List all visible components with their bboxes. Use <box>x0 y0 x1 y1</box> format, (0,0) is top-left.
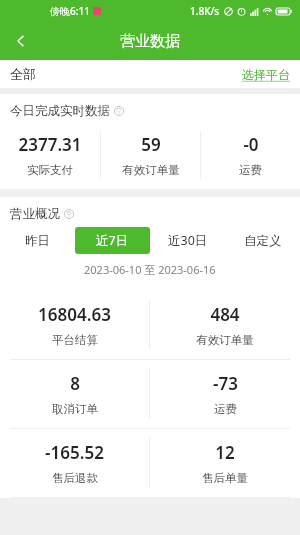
staticText: 484 <box>210 303 240 326</box>
staticText: 运费 <box>239 163 262 177</box>
staticText: 16804.63 <box>38 303 111 326</box>
staticText: 售后退款 <box>52 471 98 485</box>
button[interactable]: 近7日 <box>75 227 150 254</box>
staticText: 全部 <box>10 66 36 82</box>
staticText: 有效订单量 <box>122 163 180 177</box>
button[interactable]: Back <box>0 22 42 60</box>
staticText: 昨日 <box>25 233 50 249</box>
button[interactable]: 选择平台 <box>242 67 290 82</box>
staticText: 1.8K/s <box>190 4 220 18</box>
staticText: 售后单量 <box>202 471 248 485</box>
staticText: -73 <box>213 372 238 395</box>
staticText: 傍晚6:11 <box>50 4 90 18</box>
staticText: 取消订单 <box>52 402 98 416</box>
staticText: 自定义 <box>244 233 282 249</box>
staticText: 今日完成实时数据 <box>10 103 110 119</box>
button[interactable]: 自定义 <box>225 227 300 254</box>
staticText: 2023-06-10 至 2023-06-16 <box>84 262 216 277</box>
staticText: 2377.31 <box>18 133 82 156</box>
staticText: 12 <box>215 441 235 464</box>
button[interactable]: 昨日 <box>0 227 75 254</box>
staticText: 实际支付 <box>27 163 73 177</box>
staticText: 近7日 <box>96 232 129 249</box>
staticText: 59 <box>141 133 161 156</box>
staticText: 营业概况 <box>10 206 60 222</box>
staticText: 有效订单量 <box>196 333 254 347</box>
staticText: 近30日 <box>168 232 208 249</box>
staticText: 营业数据 <box>120 32 180 51</box>
button[interactable]: 近30日 <box>150 227 225 254</box>
staticText: -0 <box>243 133 259 156</box>
staticText: -165.52 <box>45 441 104 464</box>
staticText: 8 <box>70 372 80 395</box>
staticText: 选择平台 <box>242 67 290 82</box>
staticText: 运费 <box>214 402 237 416</box>
staticText: 平台结算 <box>52 333 98 347</box>
